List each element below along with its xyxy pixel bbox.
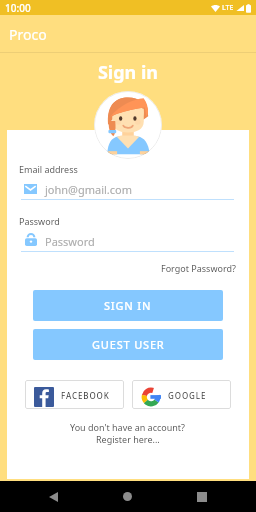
staticText: FACEBOOK — [61, 390, 110, 401]
button[interactable]: Back — [36, 481, 71, 512]
staticText: You don't have an account? — [70, 421, 186, 433]
button[interactable]: GOOGLE — [132, 380, 231, 409]
button[interactable]: Forgot Password? — [158, 260, 239, 276]
staticText: GOOGLE — [168, 390, 207, 401]
staticText: john@gmail.com — [45, 182, 133, 197]
staticText: Email address — [19, 163, 78, 175]
button[interactable]: FACEBOOK — [25, 380, 124, 409]
staticText: Proco — [9, 25, 47, 44]
staticText: SIGN IN — [104, 298, 152, 313]
button[interactable]: GUEST USER — [33, 329, 223, 360]
staticText: Password — [19, 215, 60, 227]
button[interactable]: SIGN IN — [33, 290, 223, 321]
staticText: LTE — [222, 3, 234, 13]
staticText: GUEST USER — [92, 337, 165, 352]
staticText: Forgot Password? — [161, 262, 236, 274]
staticText: Password — [45, 234, 95, 249]
button[interactable]: You don't have an account? — [0, 421, 256, 447]
button[interactable]: Recent apps — [184, 481, 219, 512]
staticText: Sign in — [0, 60, 256, 85]
staticText: Register here... — [96, 433, 160, 445]
staticText: 10:00 — [5, 1, 31, 15]
button[interactable]: Home — [110, 481, 145, 512]
